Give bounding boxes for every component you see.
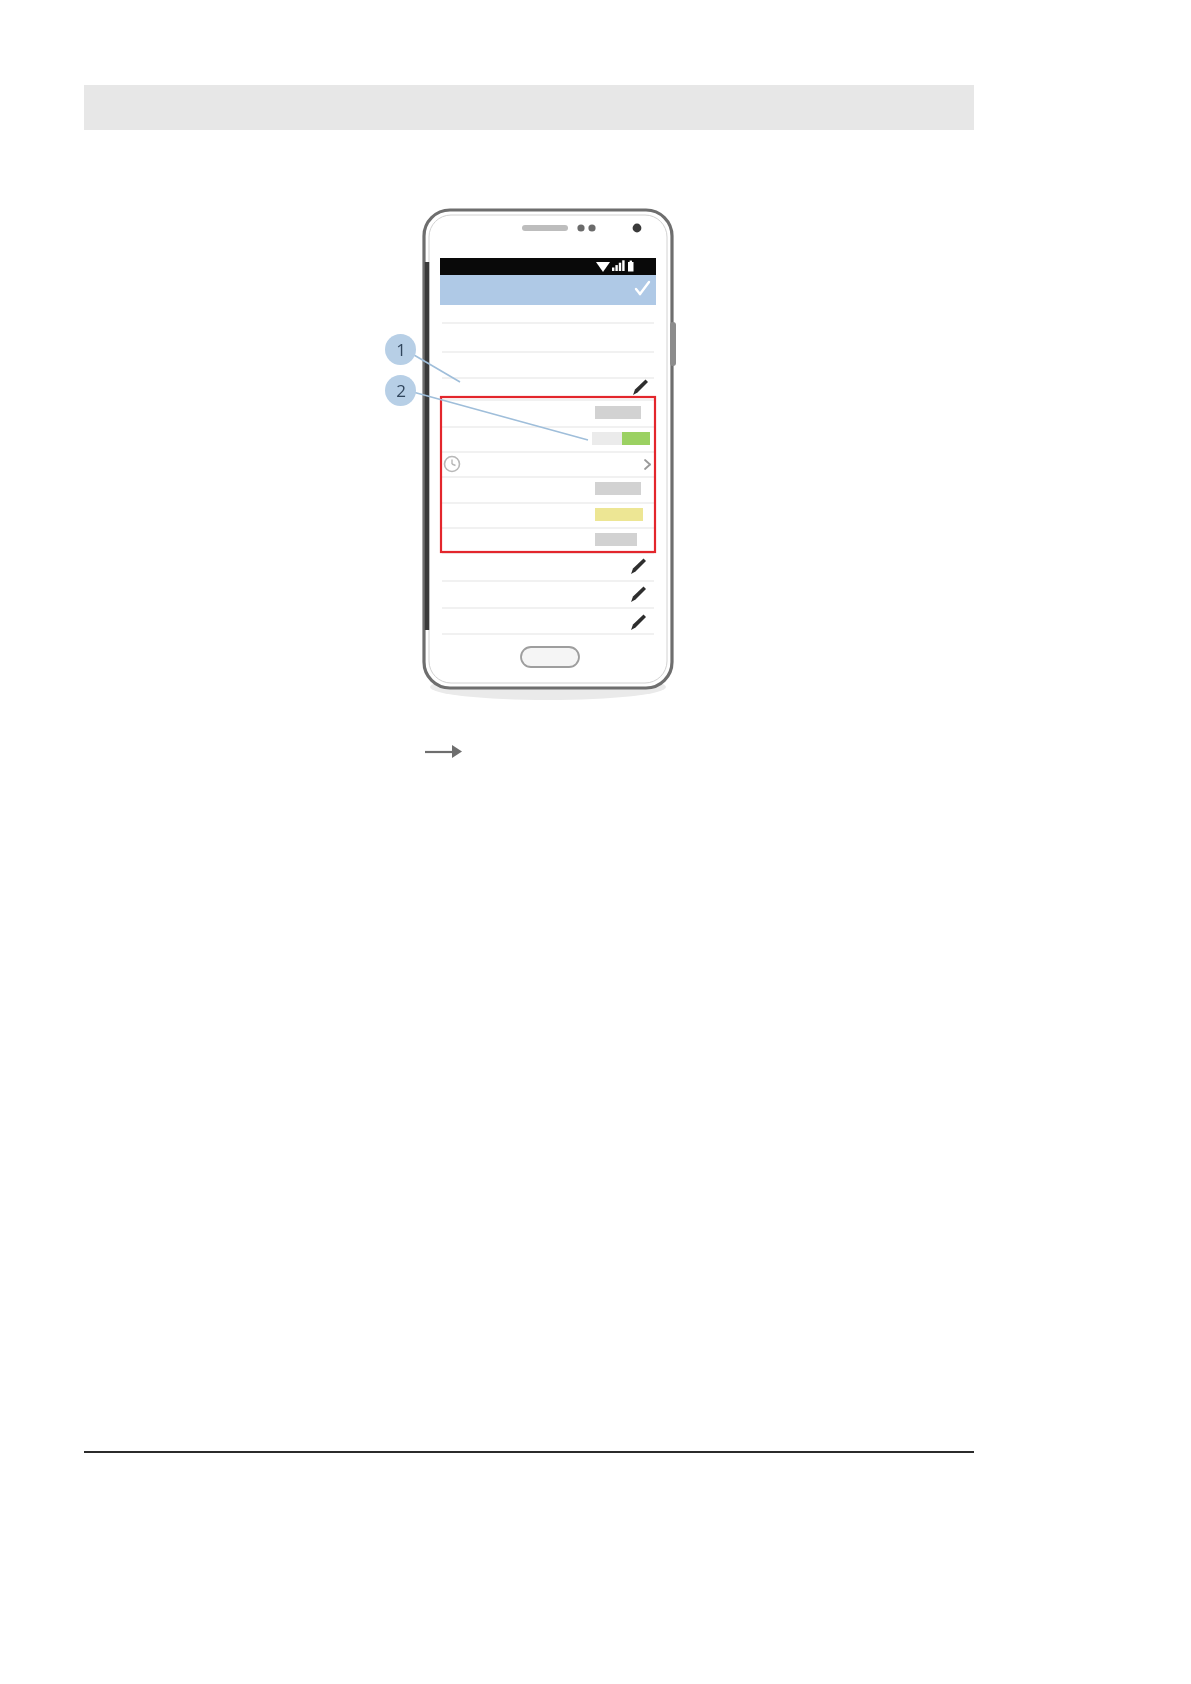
button[interactable]: Callout 1 [385, 334, 416, 365]
staticText: 1 [396, 338, 406, 361]
staticText: 2 [396, 379, 406, 402]
button[interactable]: Callout 2 [385, 375, 416, 406]
